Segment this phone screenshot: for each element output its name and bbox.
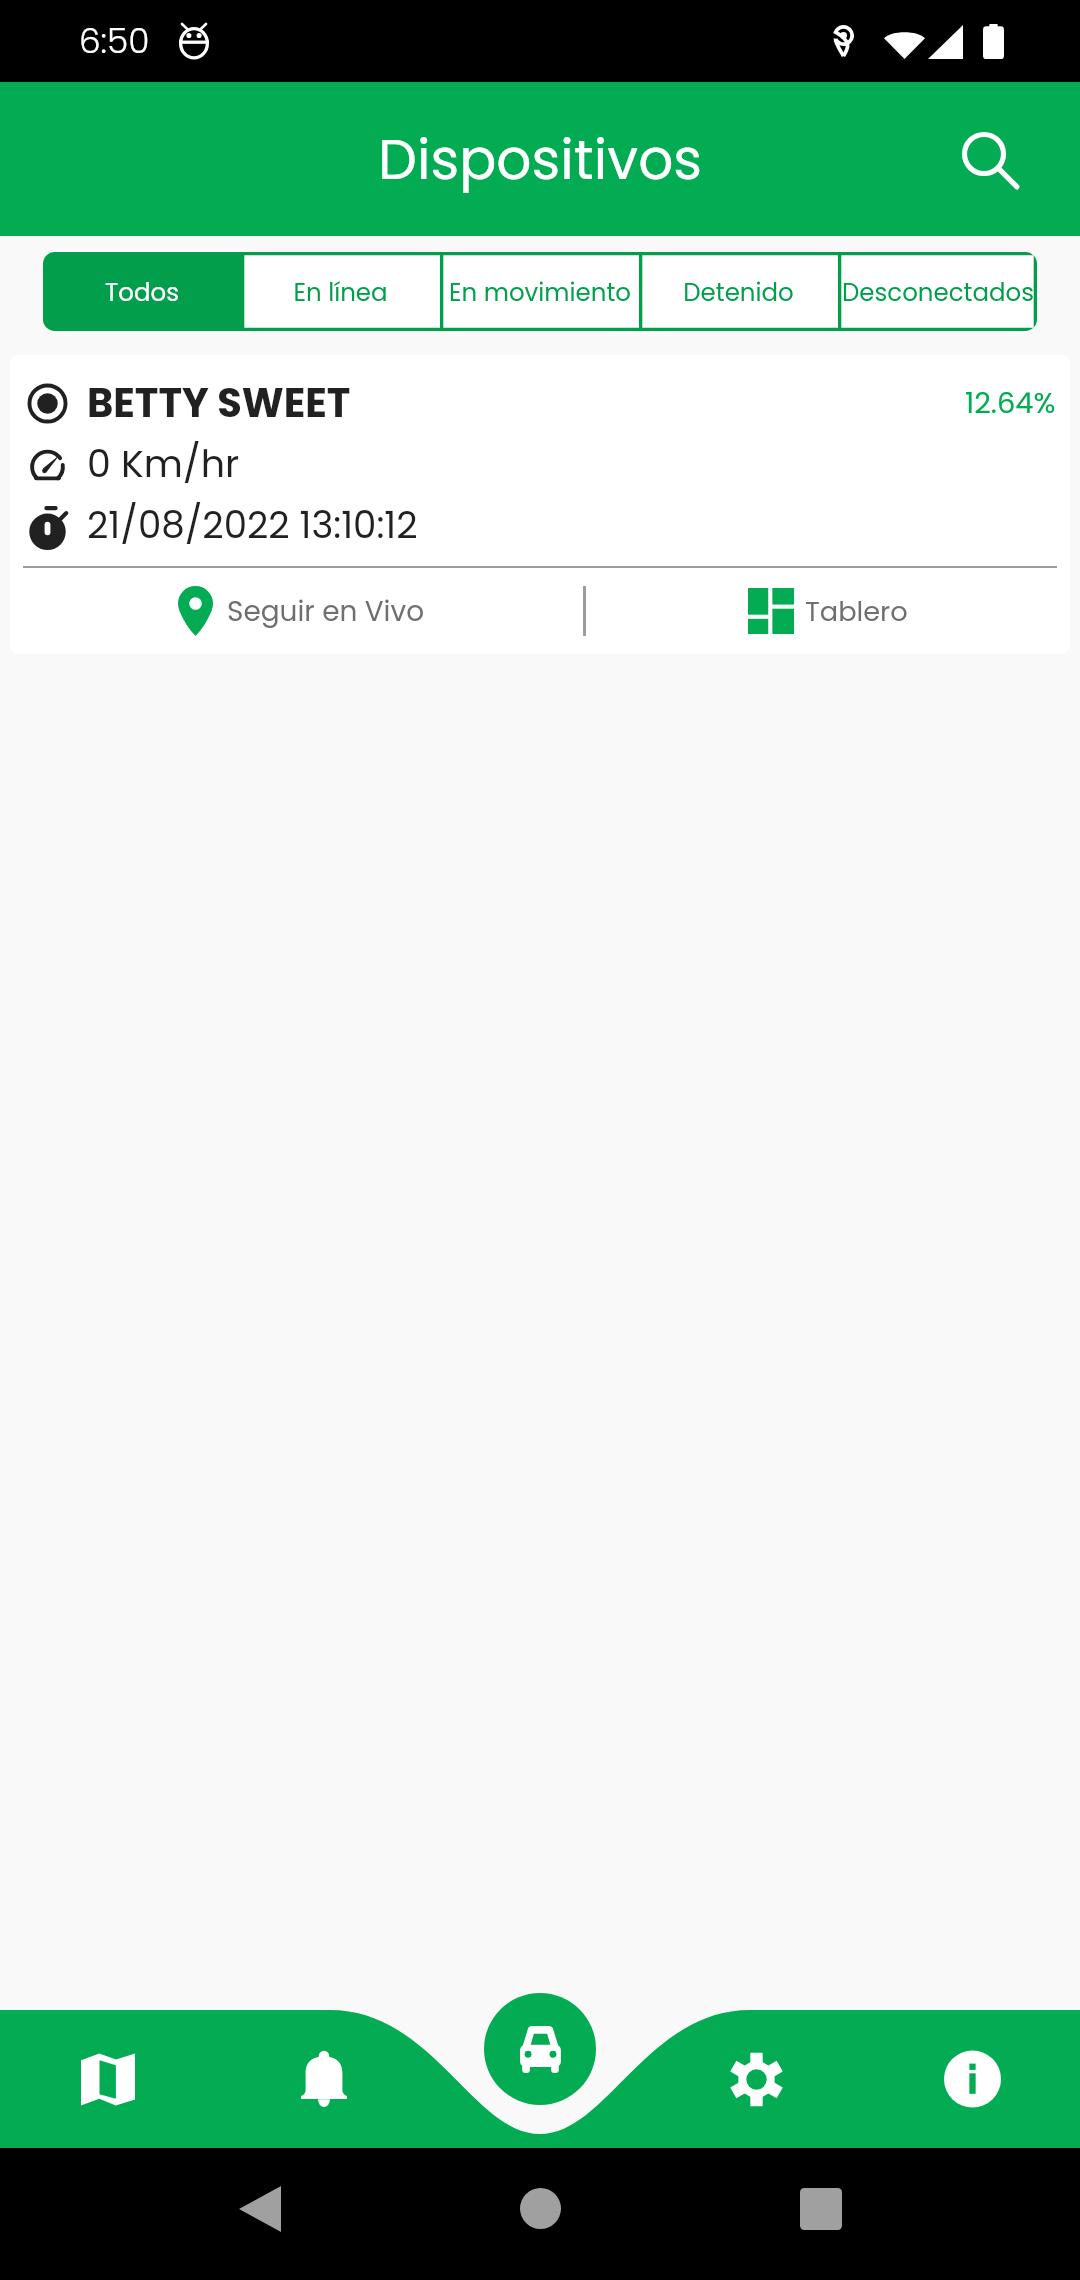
staticText: Seguir en Vivo [227,592,424,631]
staticText: Detenido [683,275,794,309]
button[interactable]: Info [864,2010,1080,2148]
staticText: 21/08/2022 13:10:12 [87,499,418,551]
button[interactable]: Notifications [216,2010,432,2148]
staticText: BETTY SWEET [87,375,351,431]
button[interactable]: Desconectados [838,252,1037,331]
staticText: Tablero [805,592,908,630]
staticText: 0 Km/hr [87,437,240,490]
button[interactable]: Tablero [586,568,1070,654]
button[interactable]: Home [480,2148,601,2269]
staticText: 12.64% [965,383,1056,423]
button[interactable]: Back [199,2148,320,2269]
staticText: Desconectados [842,275,1034,309]
button[interactable]: En línea [241,252,440,331]
staticText: Todos [105,275,179,309]
staticText: En línea [293,275,388,309]
button[interactable]: Detenido [639,252,838,331]
button[interactable]: Settings [648,2010,864,2148]
staticText: En movimiento [449,275,631,309]
button[interactable]: En movimiento [440,252,639,331]
button[interactable]: Recents [760,2148,881,2269]
button[interactable]: Search [923,93,1055,225]
button[interactable]: Vehicles [484,1993,596,2105]
staticText: 6:50 [79,17,150,65]
staticText: Dispositivos [378,121,703,198]
button[interactable]: Seguir en Vivo [10,568,583,654]
button[interactable]: Map [0,2010,216,2148]
button[interactable]: Todos [43,252,241,331]
